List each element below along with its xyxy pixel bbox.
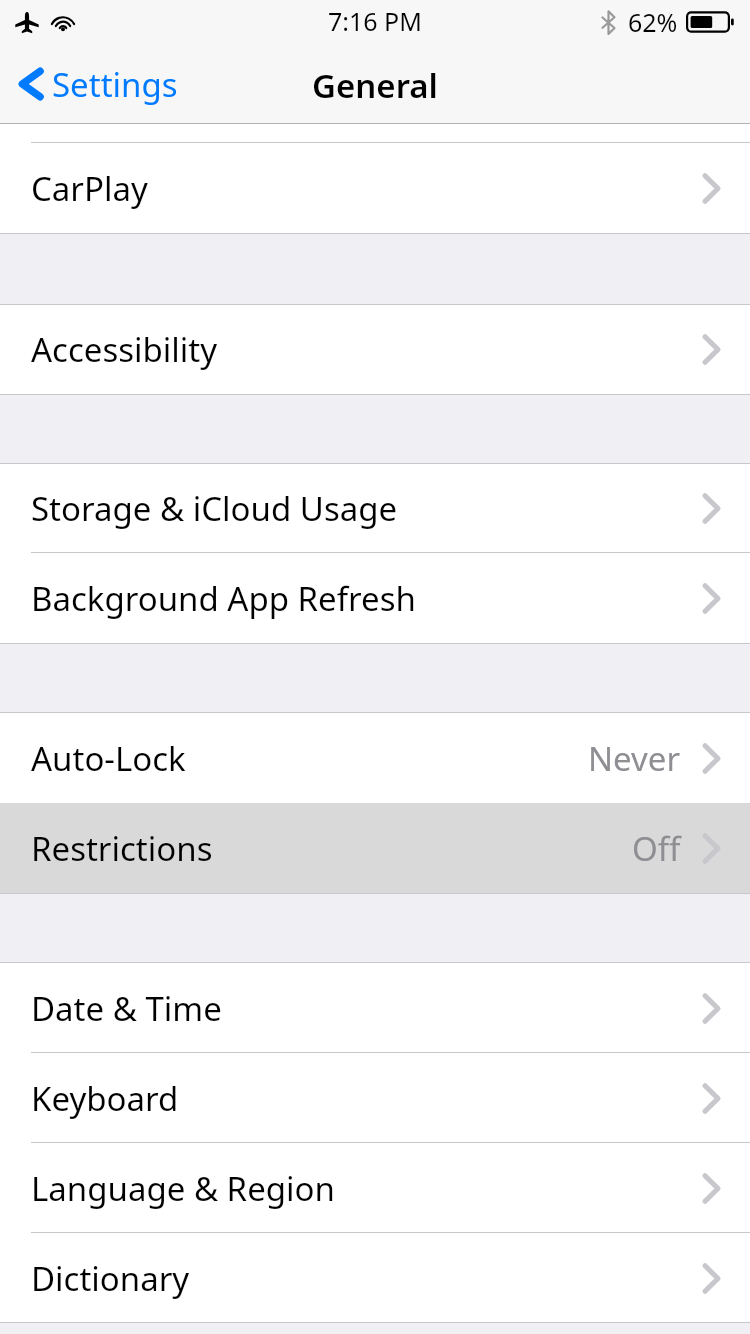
staticText: Never	[588, 736, 681, 781]
button[interactable]: Dictionary	[0, 1233, 750, 1323]
button[interactable]: Date & Time	[0, 963, 750, 1053]
button[interactable]: Settings	[0, 44, 192, 124]
staticText: Date & Time	[31, 986, 222, 1031]
staticText: 62%	[628, 5, 678, 39]
staticText: Language & Region	[31, 1166, 335, 1211]
staticText: 7:16 PM	[328, 4, 422, 38]
staticText: General	[312, 63, 438, 108]
button[interactable]: Storage & iCloud Usage	[0, 464, 750, 553]
staticText: Storage & iCloud Usage	[31, 486, 398, 531]
button[interactable]: Restrictions	[0, 803, 750, 893]
staticText: Auto-Lock	[31, 736, 186, 781]
staticText: Dictionary	[31, 1256, 190, 1301]
button[interactable]: Auto-Lock	[0, 713, 750, 803]
staticText: Settings	[52, 62, 178, 107]
button[interactable]: CarPlay	[0, 143, 750, 233]
button[interactable]: Language & Region	[0, 1143, 750, 1233]
staticText: Accessibility	[31, 327, 218, 372]
button[interactable]: Background App Refresh	[0, 553, 750, 643]
staticText: CarPlay	[31, 166, 148, 211]
button[interactable]: Keyboard	[0, 1053, 750, 1143]
button[interactable]: Accessibility	[0, 305, 750, 394]
staticText: Restrictions	[31, 826, 213, 871]
staticText: Background App Refresh	[31, 576, 416, 621]
staticText: Off	[632, 826, 681, 871]
staticText: Keyboard	[31, 1076, 179, 1121]
